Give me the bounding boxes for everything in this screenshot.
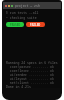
staticText: project — zsh (15, 4, 40, 8)
staticText: Running 24 specs in 6 files (6, 61, 58, 65)
staticText: Done in 4.21s (6, 85, 31, 88)
staticText: ui/layout .......... ok (6, 77, 54, 81)
staticText: ui/render .......... ok (6, 73, 54, 77)
staticText: PASSED (10, 23, 21, 27)
staticText: core/parser ........ ok (6, 65, 54, 69)
staticText: FAILED (30, 23, 41, 27)
staticText: • checking suite (6, 16, 37, 20)
button[interactable]: FAILED (26, 22, 45, 27)
staticText: $ run tests --all (6, 11, 39, 15)
staticText: net/client ......... ok (6, 81, 54, 85)
button[interactable]: PASSED (6, 22, 24, 27)
staticText: core/lexer ......... ok (6, 69, 54, 73)
